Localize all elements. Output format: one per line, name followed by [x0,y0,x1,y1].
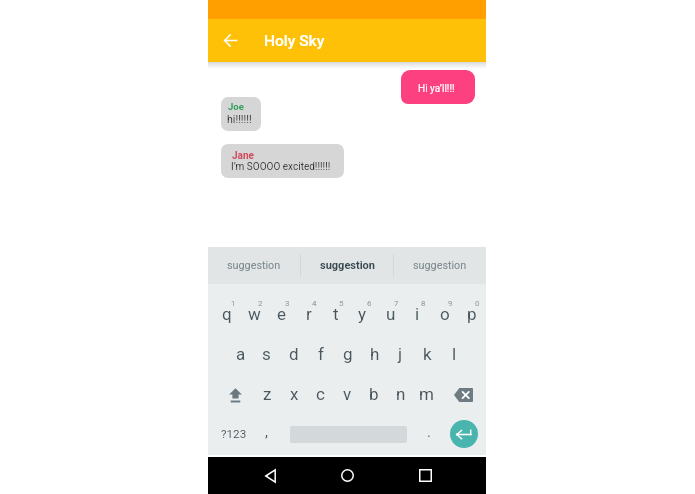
staticText: hi!!!!!! [227,113,252,125]
staticText: 3 [285,299,290,308]
staticText: Joe [228,101,244,112]
button[interactable]: j [387,344,414,374]
staticText: Jane [232,150,254,162]
staticText: o [440,304,450,324]
staticText: c [316,384,325,404]
staticText: e [277,304,287,324]
button[interactable]: d [280,344,307,374]
staticText: j [398,344,403,364]
staticText: z [263,384,272,404]
button[interactable]: q [213,294,240,334]
staticText: 0 [475,299,480,308]
button[interactable]: r [295,294,322,334]
staticText: 6 [367,299,372,308]
staticText: suggestion [413,259,467,272]
button[interactable]: Back [210,20,250,60]
staticText: 4 [312,299,317,308]
staticText: h [370,344,380,364]
staticText: x [290,384,299,404]
button[interactable]: Hi ya’ll!!! [401,70,475,104]
button[interactable]: h [361,344,388,374]
staticText: t [333,304,339,324]
staticText: r [306,304,312,324]
button[interactable]: Shift [221,381,249,409]
staticText: Hi ya’ll!!! [418,83,455,95]
staticText: p [467,304,477,324]
button[interactable]: ?123 [214,420,254,448]
staticText: l [452,344,457,364]
button[interactable]: suggestion [394,247,486,284]
button[interactable]: Enter [450,420,478,448]
staticText: 8 [421,299,426,308]
button[interactable]: Backspace [449,381,477,409]
staticText: m [419,384,434,404]
button[interactable]: m [413,384,440,414]
staticText: 7 [394,299,399,308]
button[interactable]: Joe [221,97,261,131]
button[interactable]: Back [252,457,288,494]
button[interactable]: f [307,344,334,374]
button[interactable]: w [241,294,268,334]
button[interactable]: suggestion [301,247,393,284]
staticText: i [415,304,420,324]
staticText: y [358,304,367,324]
staticText: d [289,344,299,364]
staticText: Holy Sky [264,32,325,50]
staticText: u [386,304,396,324]
button[interactable]: suggestion [208,247,300,284]
staticText: suggestion [320,259,375,272]
button[interactable]: e [268,294,295,334]
button[interactable]: n [387,384,414,414]
staticText: 2 [258,299,263,308]
staticText: ?123 [221,427,247,441]
button[interactable]: Recents [407,457,443,494]
staticText: 1 [231,299,236,308]
button[interactable]: c [307,384,334,414]
button[interactable]: u [377,294,404,334]
button[interactable]: o [431,294,458,334]
staticText: g [343,344,353,364]
button[interactable]: , [254,418,279,446]
button[interactable]: b [360,384,387,414]
staticText: . [427,423,431,441]
staticText: b [369,384,379,404]
staticText: a [236,344,246,364]
button[interactable]: z [254,384,281,414]
staticText: w [248,304,261,324]
staticText: s [262,344,271,364]
staticText: q [222,304,232,324]
staticText: suggestion [227,259,281,272]
button[interactable]: Home [329,457,365,494]
button[interactable]: y [349,294,376,334]
button[interactable]: g [334,344,361,374]
button[interactable]: x [281,384,308,414]
staticText: n [396,384,406,404]
button[interactable]: i [404,294,431,334]
button[interactable]: a [227,344,254,374]
button[interactable]: Jane [221,144,344,178]
button[interactable]: l [441,344,468,374]
button[interactable]: t [322,294,349,334]
button[interactable]: k [414,344,441,374]
staticText: v [343,384,352,404]
button[interactable]: . [416,418,441,446]
staticText: 9 [448,299,453,308]
button[interactable]: s [253,344,280,374]
staticText: f [318,344,324,364]
button[interactable]: v [334,384,361,414]
staticText: I’m SOOOO excited!!!!!! [231,161,331,173]
staticText: 5 [339,299,344,308]
button[interactable]: p [458,294,485,334]
staticText: , [265,423,268,441]
staticText: k [423,344,432,364]
